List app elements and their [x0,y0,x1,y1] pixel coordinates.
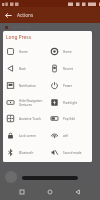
button[interactable]: Power [47,78,92,93]
staticText: Flashlight [63,101,78,105]
button[interactable]: Lock screen [3,128,47,143]
button[interactable]: Recents [16,186,28,198]
button[interactable]: Back [72,186,84,198]
staticText: Long Press [6,34,31,41]
staticText: Bluetooth [19,151,34,155]
staticText: Lock screen [19,134,37,138]
button[interactable]: Back [3,61,47,76]
button[interactable]: Pop Edit [47,111,92,126]
button[interactable]: Notification [3,78,47,93]
staticText: Home [19,50,28,54]
button[interactable]: Home [3,44,47,59]
button[interactable]: Flashlight [47,95,92,110]
button[interactable]: Hide Navigation Gestures [3,95,47,110]
button[interactable]: Recent [47,61,92,76]
staticText: Assistive Touch [19,117,41,121]
button[interactable]: Sound mode [47,145,92,160]
button[interactable]: Home [44,186,56,198]
staticText: Sound mode [63,151,82,155]
button[interactable]: wifi [47,128,92,143]
button[interactable]: Back [0,7,16,23]
staticText: Home [63,50,72,54]
staticText: Notification [19,84,36,88]
staticText: Recent [63,67,73,71]
button[interactable]: Bluetooth [3,145,47,160]
staticText: Pop Edit [63,117,75,121]
button[interactable]: Assistive ball [5,171,17,183]
staticText: wifi [63,134,69,138]
button[interactable]: Home [47,44,92,59]
staticText: Back [19,67,26,71]
staticText: Power [63,84,73,88]
button[interactable]: Assistive Touch [3,111,47,126]
staticText: Actions [17,12,34,18]
staticText: Hide Navigation Gestures [19,99,43,107]
